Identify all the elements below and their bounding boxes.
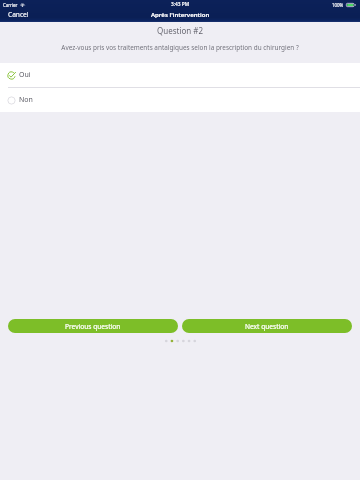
staticText: 100%	[332, 2, 344, 8]
button[interactable]: Cancel	[0, 8, 39, 22]
staticText: Oui	[19, 70, 31, 80]
staticText: 3:43 PM	[171, 1, 190, 8]
staticText: Carrier	[3, 2, 18, 8]
staticText: Next question	[245, 322, 289, 331]
button[interactable]: Previous question	[8, 319, 178, 333]
button[interactable]: Next question	[182, 319, 352, 333]
staticText: Non	[19, 95, 33, 105]
button[interactable]: Not selected	[0, 88, 360, 112]
other: Battery full	[346, 3, 356, 7]
other: Selected	[6, 70, 17, 81]
staticText: Après l'intervention	[151, 11, 210, 19]
other: Not selected	[6, 95, 17, 106]
button[interactable]: Selected	[0, 63, 360, 87]
staticText: Avez-vous pris vos traitements antalgiqu…	[18, 43, 342, 52]
staticText: Question #2	[0, 25, 360, 36]
staticText: Previous question	[65, 322, 121, 331]
other: Wi-Fi signal	[20, 3, 25, 7]
staticText: Cancel	[8, 10, 29, 19]
